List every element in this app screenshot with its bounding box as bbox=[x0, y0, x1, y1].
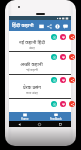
button[interactable]: Share bbox=[69, 34, 75, 40]
staticText: संग्रह bbox=[29, 46, 35, 50]
staticText: प्रेरक प्रसंग bbox=[23, 84, 41, 90]
button[interactable]: Back bbox=[9, 121, 29, 127]
button[interactable]: Share bbox=[69, 54, 75, 60]
button[interactable]: Home bbox=[9, 112, 40, 121]
staticText: हिंदी कहानी bbox=[12, 22, 34, 29]
button[interactable]: Play bbox=[9, 51, 71, 74]
button[interactable]: Gallery bbox=[37, 22, 45, 30]
button[interactable]: Play bbox=[51, 77, 57, 83]
button[interactable]: Favorite bbox=[60, 101, 66, 107]
button[interactable]: Favorite bbox=[60, 34, 66, 40]
button[interactable]: Favorite bbox=[60, 77, 66, 83]
staticText: कथा संग्रह bbox=[26, 91, 38, 95]
staticText: अच्छी कहानी bbox=[20, 61, 43, 67]
button[interactable]: Play bbox=[51, 54, 57, 60]
staticText: नई कहानी bbox=[26, 68, 38, 72]
button[interactable]: Play bbox=[9, 74, 71, 98]
button[interactable]: Play bbox=[51, 101, 57, 107]
staticText: Feedback bbox=[50, 117, 62, 121]
button[interactable]: Play bbox=[9, 31, 71, 51]
button[interactable]: Share bbox=[69, 77, 75, 83]
button[interactable]: Play bbox=[51, 34, 57, 40]
staticText: Home bbox=[21, 117, 29, 121]
button[interactable]: Feedback bbox=[61, 22, 69, 30]
button[interactable]: Feedback bbox=[40, 112, 71, 121]
button[interactable]: Share bbox=[45, 22, 53, 30]
button[interactable]: Recents bbox=[50, 121, 71, 127]
button[interactable]: Info bbox=[53, 22, 61, 30]
button[interactable]: Favorite bbox=[60, 54, 66, 60]
button[interactable]: Share bbox=[69, 101, 75, 107]
button[interactable]: Home bbox=[29, 121, 50, 127]
staticText: नई कहानी हिंदी bbox=[19, 39, 45, 45]
button[interactable]: Play bbox=[9, 98, 71, 112]
